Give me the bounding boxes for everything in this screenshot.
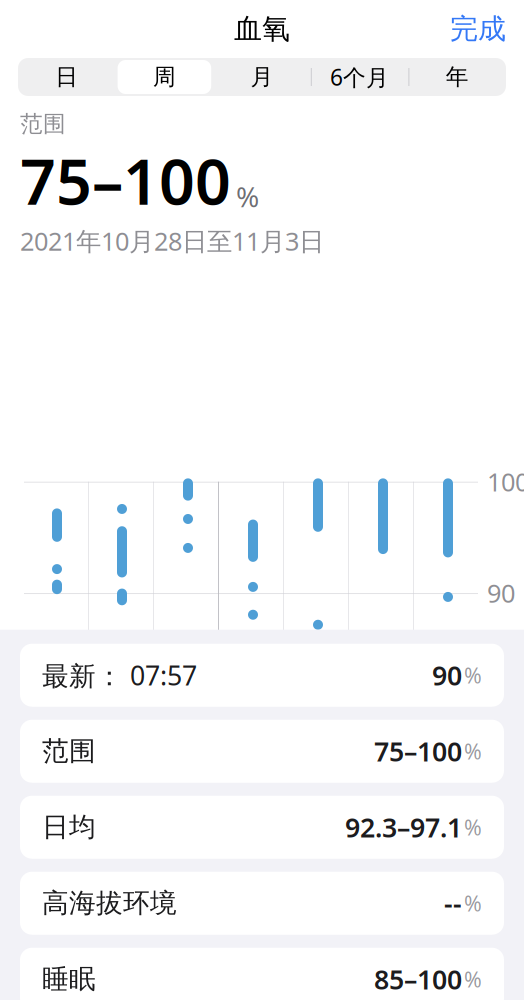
button[interactable]: 完成 bbox=[432, 4, 524, 54]
staticText: 血氧 bbox=[234, 12, 290, 46]
button[interactable]: 范围 bbox=[20, 720, 504, 783]
button[interactable]: 日均 bbox=[20, 796, 504, 859]
staticText: 6个月 bbox=[330, 62, 389, 92]
staticText: 周 bbox=[153, 63, 176, 91]
staticText: -- bbox=[444, 885, 462, 921]
staticText: 周四 bbox=[28, 820, 68, 845]
staticText: 范围 bbox=[42, 735, 96, 768]
staticText: 周五 bbox=[93, 820, 133, 845]
staticText: 90 bbox=[432, 657, 462, 693]
button[interactable]: 高海拔环境 bbox=[20, 872, 504, 935]
staticText: 月 bbox=[250, 63, 273, 91]
staticText: % bbox=[464, 889, 482, 917]
button[interactable]: 最新： 07:57 bbox=[20, 644, 504, 707]
button[interactable]: 日 bbox=[18, 58, 116, 96]
staticText: 日均 bbox=[42, 811, 96, 844]
staticText: 75–100 bbox=[374, 733, 462, 769]
staticText: 70 bbox=[487, 799, 515, 832]
button[interactable]: 6个月 bbox=[311, 58, 408, 96]
staticText: % bbox=[464, 813, 482, 841]
staticText: % bbox=[464, 965, 482, 993]
button[interactable]: 睡眠 bbox=[20, 948, 504, 1000]
staticText: 80 bbox=[487, 687, 515, 721]
staticText: 日 bbox=[55, 63, 78, 91]
staticText: % bbox=[236, 178, 259, 215]
button[interactable]: 周 bbox=[116, 58, 213, 96]
staticText: 完成 bbox=[450, 12, 506, 46]
button[interactable]: 月 bbox=[213, 58, 311, 96]
staticText: 年 bbox=[446, 63, 469, 91]
staticText: 周二 bbox=[354, 820, 394, 845]
staticText: 高海拔环境 bbox=[42, 887, 177, 920]
staticText: 75–100 bbox=[20, 139, 231, 222]
staticText: 92.3–97.1 bbox=[345, 809, 462, 845]
staticText: % bbox=[464, 661, 482, 689]
button[interactable]: 年 bbox=[408, 58, 506, 96]
staticText: 周三 bbox=[419, 820, 459, 845]
staticText: 范围 bbox=[20, 110, 66, 138]
staticText: 2021年10月28日至11月3日 bbox=[20, 224, 324, 258]
staticText: 睡眠 bbox=[42, 963, 96, 996]
staticText: 100 bbox=[487, 465, 524, 498]
staticText: 85–100 bbox=[374, 961, 462, 997]
staticText: 90 bbox=[487, 576, 515, 610]
staticText: 最新： 07:57 bbox=[42, 657, 197, 693]
staticText: % bbox=[464, 737, 482, 765]
